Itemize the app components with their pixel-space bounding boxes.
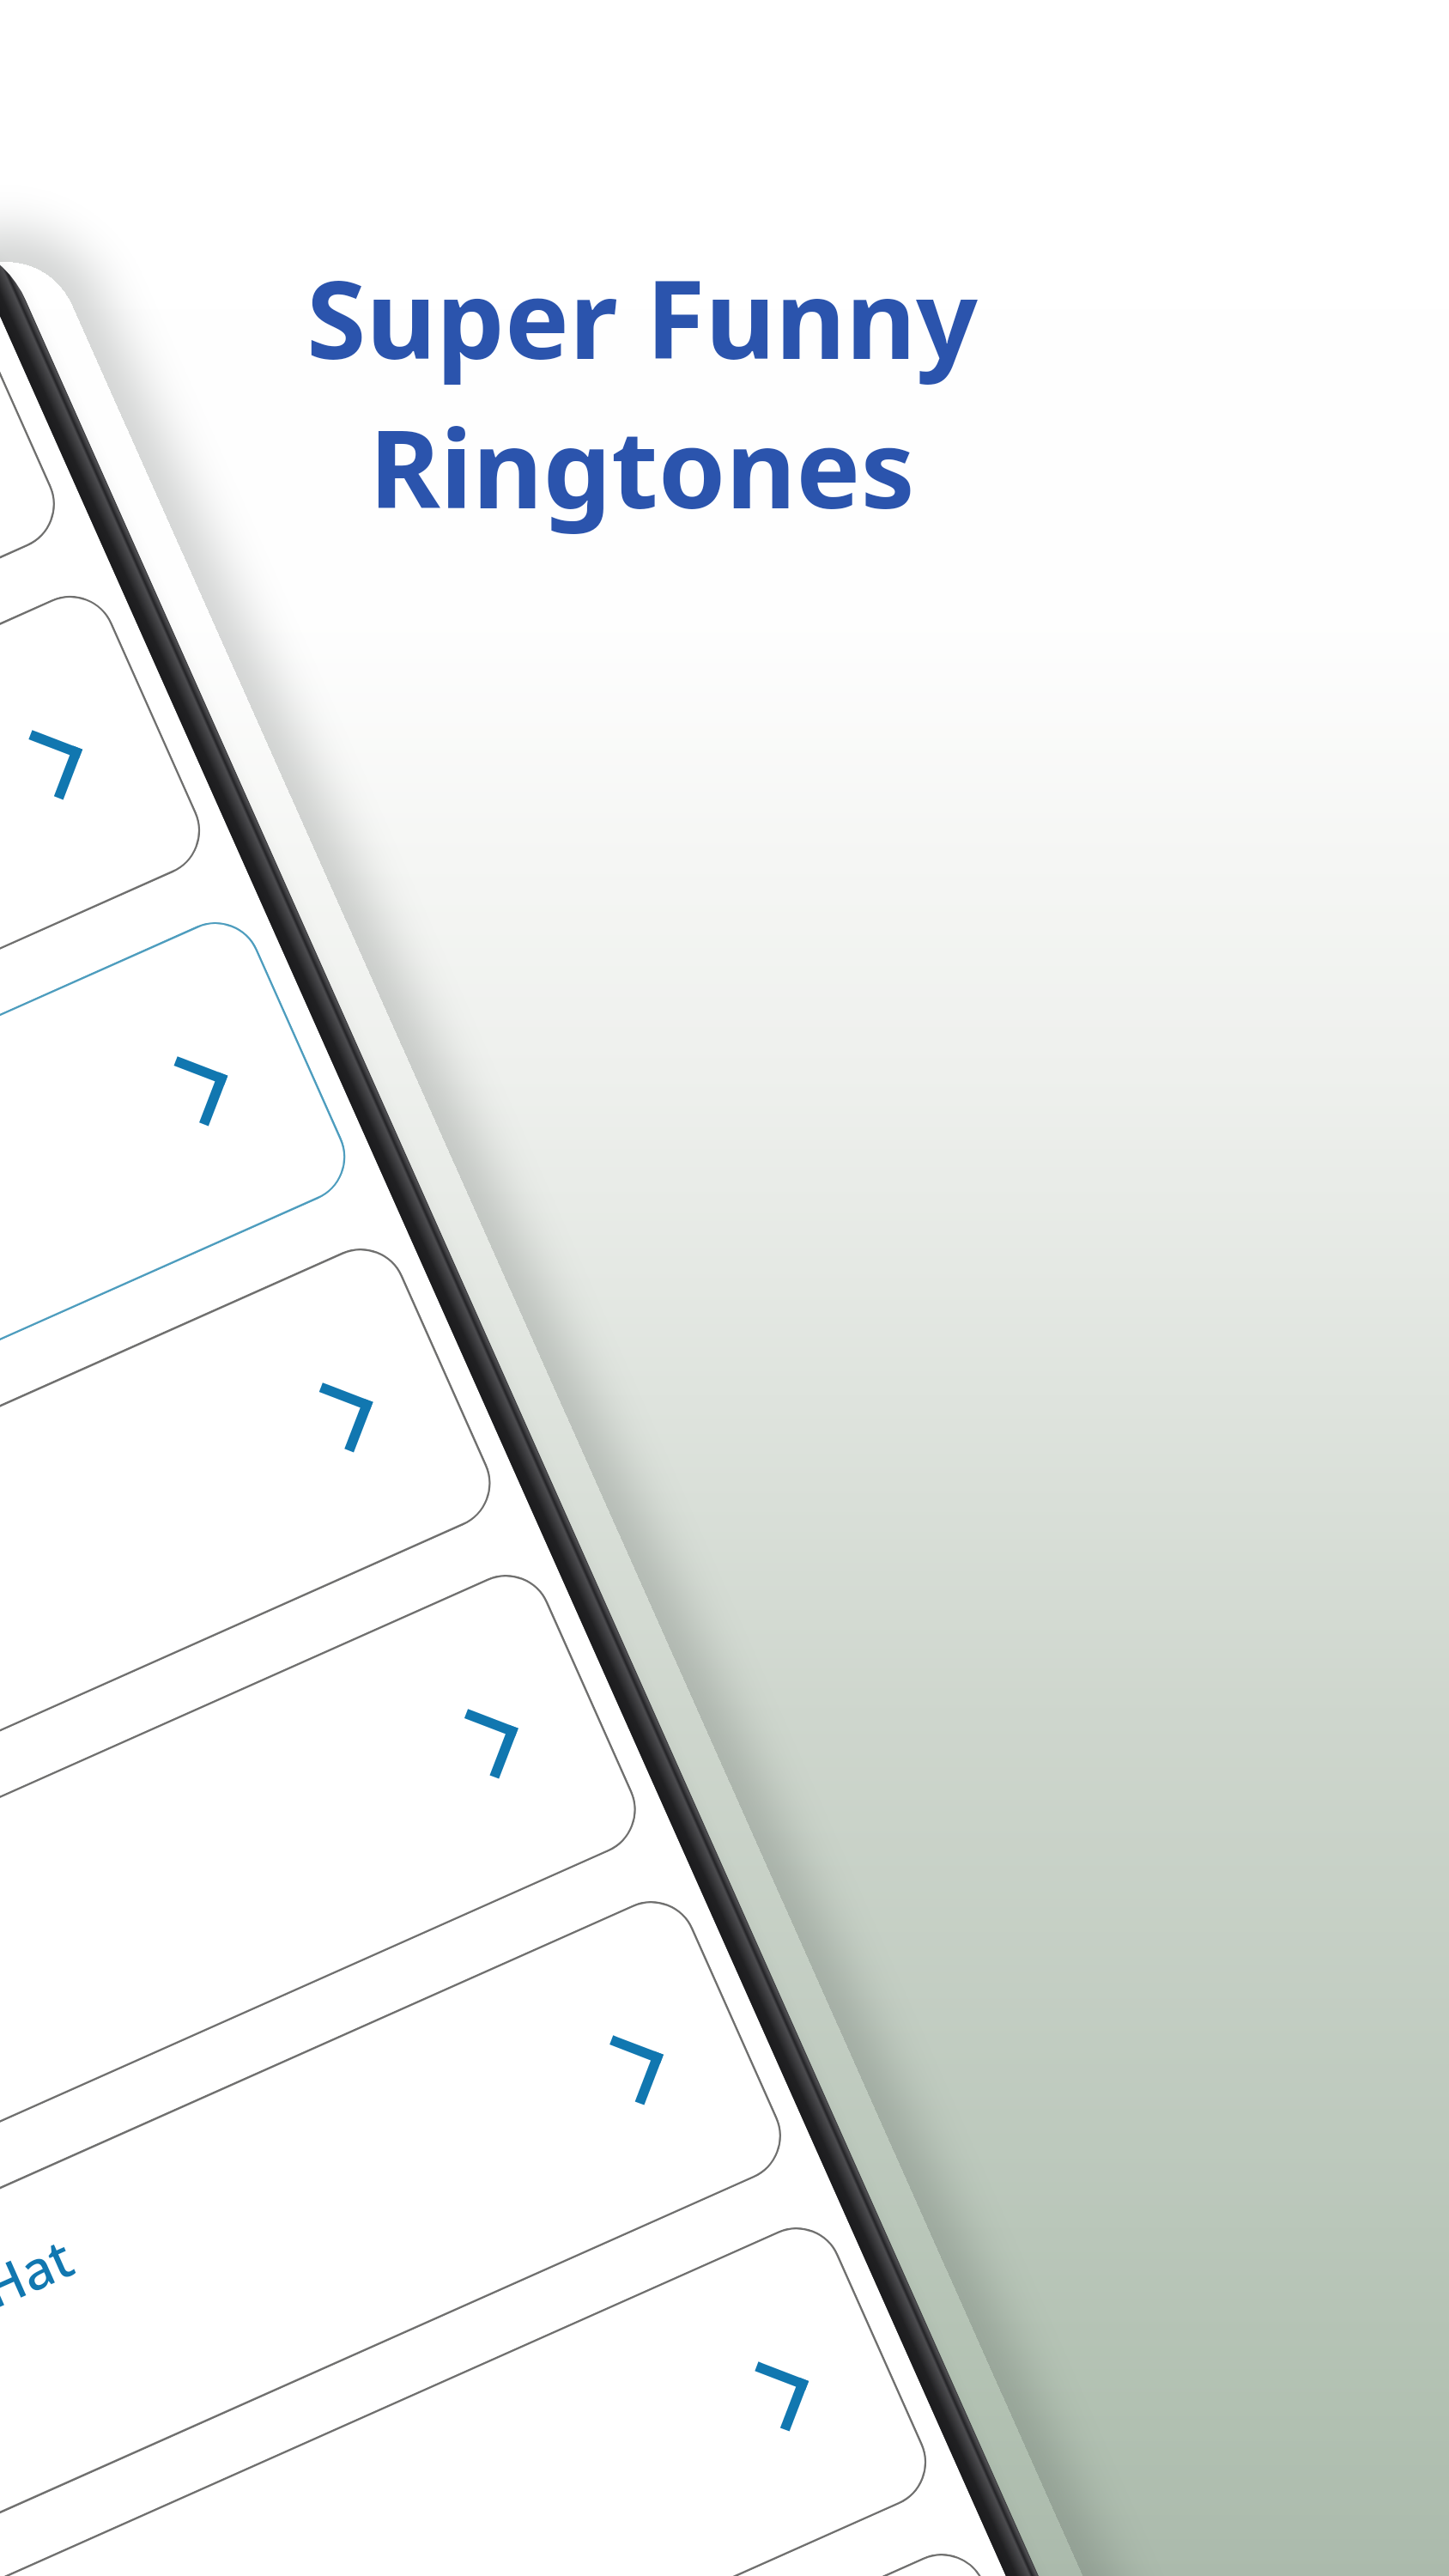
- staticText: Funny Robot Voice: [0, 2553, 215, 2576]
- button[interactable]: Hilarious Cat Meow: [0, 1560, 651, 2342]
- button[interactable]: Funny Duck Quack: [0, 1234, 506, 2016]
- button[interactable]: Open ringtone: [0, 699, 118, 824]
- button[interactable]: Open ringtone: [719, 2331, 844, 2455]
- button[interactable]: Comic Mexican Hat: [0, 1886, 796, 2576]
- button[interactable]: Crazy Laughing Tone: [0, 581, 215, 1363]
- staticText: Comic Mexican Hat: [0, 2221, 84, 2485]
- button[interactable]: Happy Funny Ringtone: [0, 255, 70, 1037]
- button[interactable]: Open ringtone: [429, 1678, 554, 1803]
- button[interactable]: Open ringtone: [284, 1352, 408, 1476]
- button[interactable]: Funny Robot Voice: [0, 2213, 941, 2576]
- button[interactable]: Goofy Comedy Horn: [0, 2539, 1086, 2576]
- button[interactable]: Open ringtone: [574, 2004, 699, 2129]
- staticText: Super Funny Ringtones: [256, 243, 1028, 540]
- button[interactable]: Silly Cartoon Song: [0, 907, 360, 1689]
- button[interactable]: Open ringtone: [138, 1025, 263, 1150]
